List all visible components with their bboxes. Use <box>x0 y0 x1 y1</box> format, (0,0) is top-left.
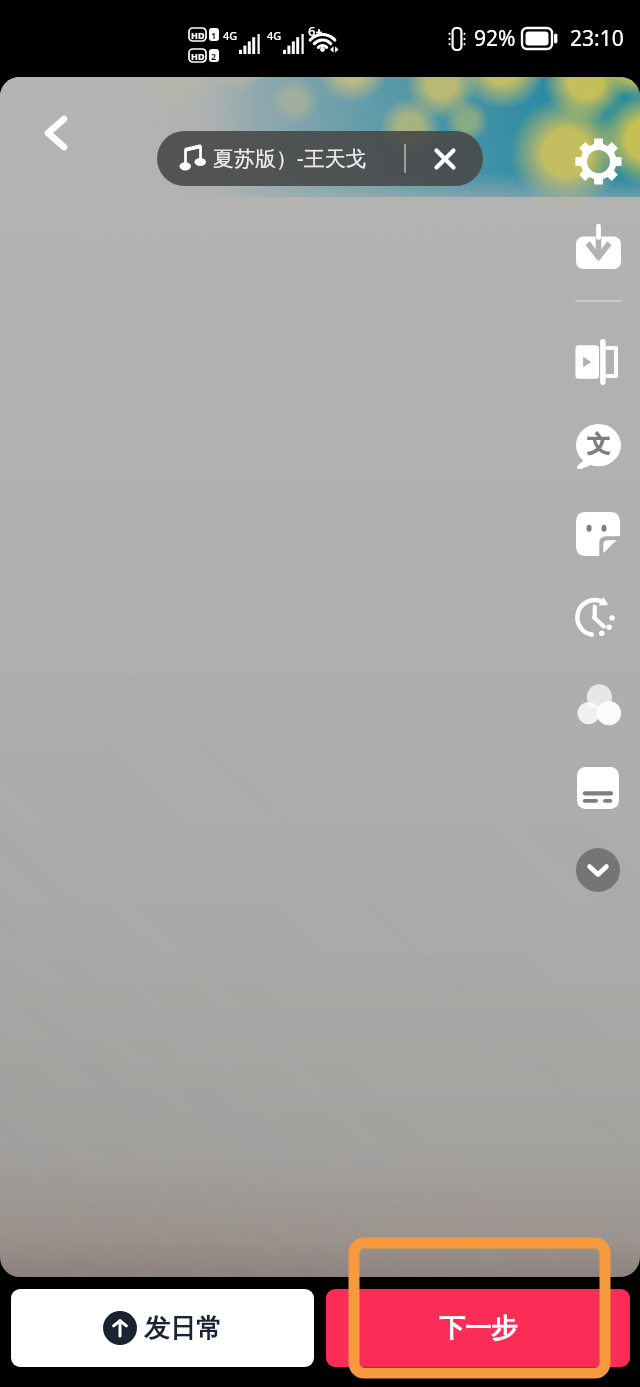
staticText: HD <box>191 29 205 41</box>
staticText: 发日常 <box>144 1312 222 1345</box>
button[interactable]: Remove music <box>406 131 483 186</box>
button[interactable]: Filters <box>566 673 630 737</box>
button[interactable]: Settings <box>566 129 630 193</box>
button[interactable]: More options <box>576 848 620 892</box>
staticText: 1 <box>211 29 217 41</box>
staticText: 2 <box>211 50 217 62</box>
button[interactable]: Speed <box>566 584 630 648</box>
staticText: 4G <box>267 28 282 43</box>
staticText: 夏苏版）-王天戈 <box>213 144 367 173</box>
staticText: 6 <box>308 22 316 40</box>
staticText: 92% <box>474 24 516 53</box>
staticText: 4G <box>223 28 238 43</box>
button[interactable]: Captions <box>566 414 630 478</box>
button[interactable]: Stickers <box>566 502 630 566</box>
button[interactable]: Cover <box>566 756 630 820</box>
button[interactable]: Auto cut <box>566 330 630 394</box>
button[interactable]: Back <box>24 101 88 165</box>
button[interactable]: 下一步 <box>326 1289 630 1367</box>
staticText: 下一步 <box>439 1312 517 1345</box>
staticText: HD <box>191 50 205 62</box>
staticText: 文 <box>587 430 610 459</box>
button[interactable]: 发日常 <box>11 1289 314 1367</box>
button[interactable]: 夏苏版）-王天戈 <box>157 131 483 186</box>
button[interactable]: Save to album <box>566 214 630 278</box>
staticText: 23:10 <box>570 24 624 53</box>
